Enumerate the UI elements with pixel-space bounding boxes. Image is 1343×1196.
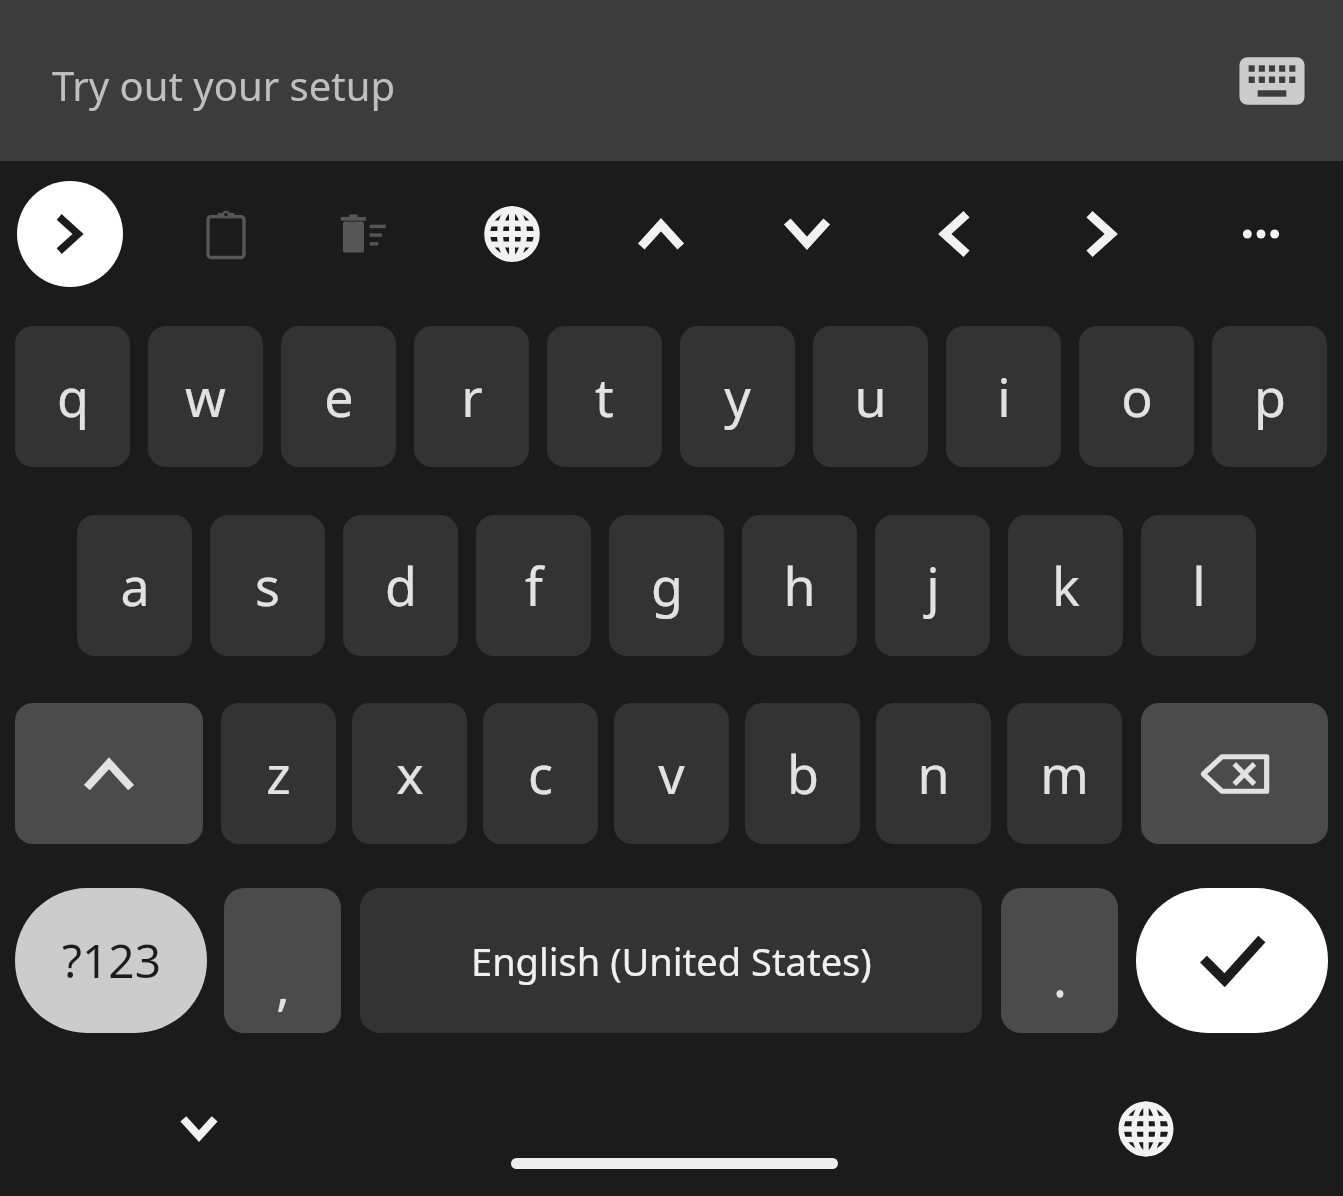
button[interactable]: j [875, 515, 990, 656]
staticText: n [917, 738, 950, 809]
button[interactable]: Move cursor left [910, 190, 998, 278]
staticText: r [461, 361, 483, 432]
button[interactable]: n [876, 703, 991, 844]
staticText: h [783, 550, 816, 621]
button[interactable]: Shift [15, 703, 203, 844]
button[interactable]: e [281, 326, 396, 467]
staticText: a [120, 550, 150, 621]
staticText: English (United States) [471, 935, 872, 987]
button[interactable]: u [813, 326, 928, 467]
button[interactable]: English (United States) [360, 888, 982, 1033]
button[interactable]: Clipboard [182, 190, 270, 278]
button[interactable]: m [1007, 703, 1122, 844]
button[interactable]: Switch language [1102, 1085, 1190, 1173]
staticText: u [854, 361, 887, 432]
button[interactable]: Move cursor right [1058, 190, 1146, 278]
staticText: e [324, 361, 354, 432]
button[interactable]: f [476, 515, 591, 656]
staticText: g [651, 550, 683, 621]
button[interactable]: l [1141, 515, 1256, 656]
button[interactable]: Move cursor up [617, 190, 705, 278]
staticText: k [1052, 550, 1080, 621]
button[interactable]: Hide keyboard [155, 1085, 243, 1173]
button[interactable]: Enter [1136, 888, 1328, 1033]
staticText: f [525, 550, 543, 621]
button[interactable]: Languages [468, 190, 556, 278]
staticText: z [266, 738, 291, 809]
staticText: d [385, 550, 417, 621]
staticText: b [787, 738, 819, 809]
button[interactable]: t [547, 326, 662, 467]
staticText: c [528, 738, 553, 809]
staticText: Try out your setup [52, 58, 396, 112]
button[interactable]: r [414, 326, 529, 467]
button[interactable]: y [680, 326, 795, 467]
staticText: q [57, 361, 89, 432]
staticText: , [276, 949, 290, 1020]
button[interactable]: Keyboard [1228, 48, 1316, 114]
staticText: v [658, 738, 685, 809]
button[interactable]: o [1079, 326, 1194, 467]
button[interactable]: , [224, 888, 341, 1033]
staticText: j [926, 550, 940, 621]
button[interactable]: v [614, 703, 729, 844]
button[interactable]: More options [1217, 190, 1305, 278]
button[interactable]: a [77, 515, 192, 656]
button[interactable]: p [1212, 326, 1327, 467]
staticText: i [997, 361, 1011, 432]
button[interactable]: w [148, 326, 263, 467]
button[interactable]: h [742, 515, 857, 656]
button[interactable]: k [1008, 515, 1123, 656]
staticText: o [1121, 361, 1153, 432]
staticText: . [1053, 941, 1067, 1012]
button[interactable]: Move cursor down [763, 190, 851, 278]
button[interactable]: i [946, 326, 1061, 467]
button[interactable]: q [15, 326, 130, 467]
button[interactable]: c [483, 703, 598, 844]
button[interactable]: g [609, 515, 724, 656]
button[interactable]: Backspace [1141, 703, 1328, 844]
staticText: w [185, 361, 226, 432]
button[interactable]: . [1001, 888, 1118, 1033]
staticText: p [1254, 361, 1286, 432]
button[interactable]: z [221, 703, 336, 844]
button[interactable]: b [745, 703, 860, 844]
button[interactable]: Expand toolbar [17, 181, 123, 287]
staticText: m [1040, 738, 1089, 809]
button[interactable]: s [210, 515, 325, 656]
staticText: s [255, 550, 280, 621]
button[interactable]: Delete [320, 190, 408, 278]
staticText: l [1192, 550, 1206, 621]
staticText: ?123 [62, 929, 161, 992]
button[interactable]: x [352, 703, 467, 844]
button[interactable]: ?123 [15, 888, 207, 1033]
button[interactable]: d [343, 515, 458, 656]
staticText: y [724, 361, 751, 432]
staticText: t [595, 361, 614, 432]
staticText: x [396, 738, 424, 809]
